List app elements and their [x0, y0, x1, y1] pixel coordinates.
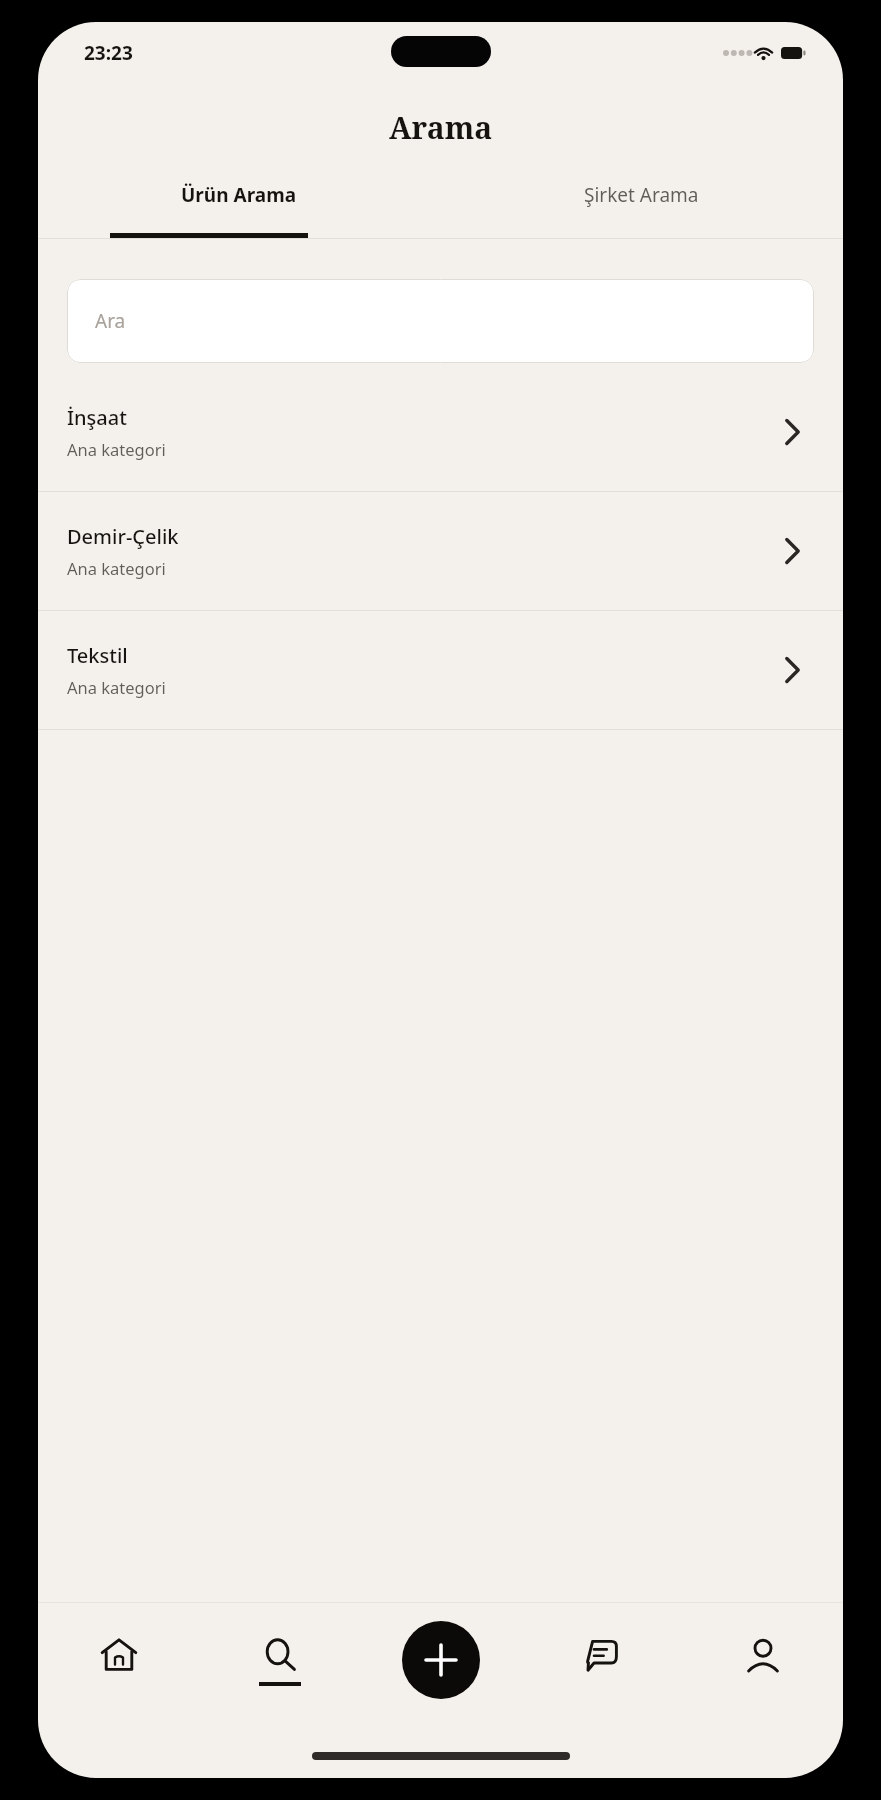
button[interactable]: Demir-Çelik [38, 492, 843, 610]
other: Aç [770, 410, 814, 454]
staticText: Demir-Çelik [67, 523, 179, 550]
other: Aç [770, 648, 814, 692]
button[interactable]: Mesajlar [521, 1602, 682, 1718]
button[interactable]: Ürün Arama [38, 170, 440, 238]
staticText: Ürün Arama [181, 182, 297, 208]
staticText: 23:23 [84, 40, 133, 66]
staticText: Ana kategori [67, 557, 166, 579]
button[interactable]: Arama [199, 1602, 360, 1718]
button[interactable]: Ekle [402, 1621, 480, 1699]
button[interactable]: Şirket Arama [440, 170, 843, 238]
staticText: Arama [389, 107, 493, 148]
staticText: Tekstil [67, 642, 128, 669]
button[interactable]: Ara [67, 279, 814, 363]
other: Aç [770, 529, 814, 573]
staticText: Şirket Arama [584, 182, 699, 208]
staticText: Ana kategori [67, 438, 166, 460]
button[interactable]: Ana Sayfa [38, 1602, 199, 1718]
staticText: İnşaat [67, 404, 127, 431]
button[interactable]: İnşaat [38, 373, 843, 491]
button[interactable]: Profil [682, 1602, 843, 1718]
staticText: Ara [95, 308, 126, 334]
staticText: Ana kategori [67, 676, 166, 698]
button[interactable]: Tekstil [38, 611, 843, 729]
